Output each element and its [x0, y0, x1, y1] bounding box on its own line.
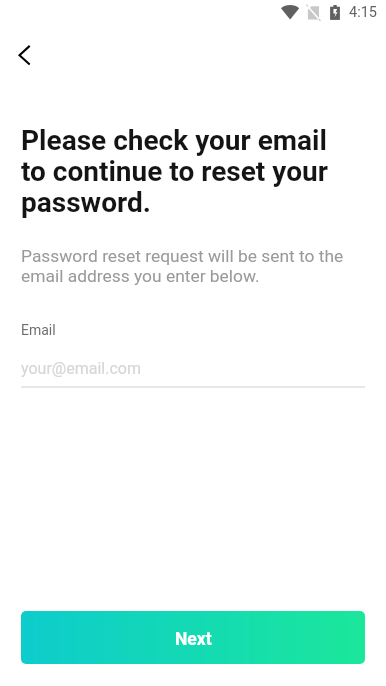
staticText: your@email.com: [21, 359, 141, 378]
staticText: Please check your email to continue to r…: [21, 124, 328, 218]
button[interactable]: your@email.com: [21, 356, 365, 380]
button[interactable]: Back: [0, 24, 48, 72]
button[interactable]: Next: [21, 611, 365, 664]
staticText: Next: [175, 629, 212, 650]
staticText: Email: [21, 322, 56, 338]
staticText: Password reset request will be sent to t…: [21, 246, 344, 286]
staticText: 4:15: [349, 4, 377, 21]
